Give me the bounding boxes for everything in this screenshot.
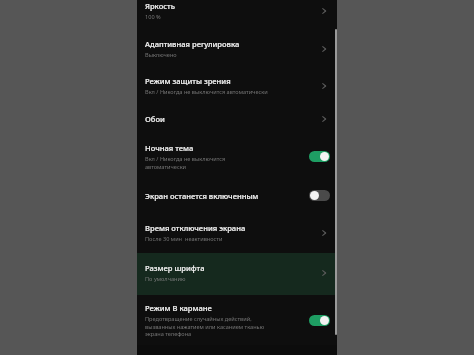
other: Open [320,114,330,124]
button[interactable]: Toggle off [309,190,330,201]
button[interactable]: Экран останется включенным [137,178,337,214]
button[interactable]: Размер шрифта [137,253,337,295]
staticText: Предотвращение случайных действий, вызва… [145,315,265,337]
button[interactable]: Toggle on [309,151,330,162]
staticText: Режим защиты зрения [145,76,231,86]
staticText: После 30 мин неактивности [145,235,223,243]
button[interactable]: Режим защиты зрения [137,68,337,104]
staticText: Выключено [145,51,177,59]
other: Open [320,228,330,238]
staticText: Вкл / Никогда не выключится автоматическ… [145,88,268,96]
button[interactable]: Адаптивная регулировка [137,31,337,68]
other: Open [320,81,330,91]
staticText: Обои [145,114,165,124]
button[interactable]: Режим В кармане [137,295,337,345]
button[interactable]: Время отключения экрана [137,214,337,253]
other: Open [320,44,330,54]
button[interactable]: Ночная тема [137,135,337,178]
staticText: 100 % [145,13,161,21]
staticText: Экран останется включенным [145,191,259,201]
staticText: Яркость [145,1,175,11]
staticText: Адаптивная регулировка [145,39,240,49]
other: Open [320,6,330,16]
other: Open [320,268,330,278]
staticText: По умолчанию [145,275,186,283]
button[interactable]: Яркость [137,0,337,31]
staticText: Вкл / Никогда не выключится автоматическ… [145,155,226,170]
staticText: Время отключения экрана [145,223,246,233]
staticText: Режим В кармане [145,303,212,313]
staticText: Ночная тема [145,143,194,153]
button[interactable]: Toggle on [309,315,330,326]
staticText: Размер шрифта [145,263,205,273]
button[interactable]: Обои [137,104,337,135]
